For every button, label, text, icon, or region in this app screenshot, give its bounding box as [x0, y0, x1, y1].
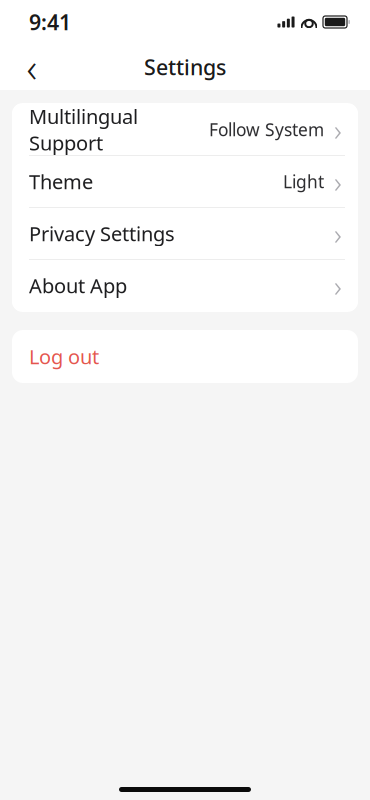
button[interactable]: Privacy Settings	[12, 208, 358, 259]
staticText: Log out	[29, 343, 99, 370]
staticText: ›	[334, 162, 342, 201]
staticText: 9:41	[29, 8, 71, 36]
staticText: ›	[334, 214, 342, 253]
button[interactable]: Back	[12, 46, 52, 88]
button[interactable]: Multilingual Support	[12, 104, 358, 155]
button[interactable]: About App	[12, 260, 358, 311]
staticText: Settings	[144, 53, 226, 81]
staticText: Privacy Settings	[29, 220, 175, 247]
staticText: ›	[334, 110, 342, 149]
staticText: ‹	[26, 40, 37, 93]
staticText: Light	[283, 170, 324, 193]
staticText: Theme	[29, 168, 93, 195]
staticText: About App	[29, 272, 127, 299]
staticText: Follow System	[209, 118, 324, 141]
button[interactable]: Log out	[12, 330, 358, 383]
staticText: Multilingual Support	[29, 103, 138, 156]
staticText: ›	[334, 266, 342, 305]
button[interactable]: Theme	[12, 156, 358, 207]
